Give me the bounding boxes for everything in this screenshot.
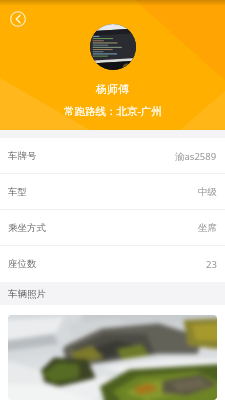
button[interactable]: 乘坐方式 [0,210,225,246]
staticText: 杨师傅 [96,82,129,96]
staticText: 乘坐方式 [8,222,46,234]
button[interactable]: 座位数 [0,246,225,282]
staticText: 座位数 [8,258,37,270]
button[interactable]: 车牌号 [0,138,225,174]
staticText: 23 [206,258,217,271]
staticText: 车型 [8,186,27,198]
staticText: 坐席 [198,222,217,234]
staticText: 车牌号 [8,150,37,162]
button[interactable]: 车型 [0,174,225,210]
staticText: 车辆照片 [8,288,46,300]
staticText: 中级 [198,186,217,198]
staticText: 渝as2589 [175,150,217,163]
button[interactable]: Back [10,11,26,27]
staticText: 常跑路线：北京-广州 [64,104,162,118]
